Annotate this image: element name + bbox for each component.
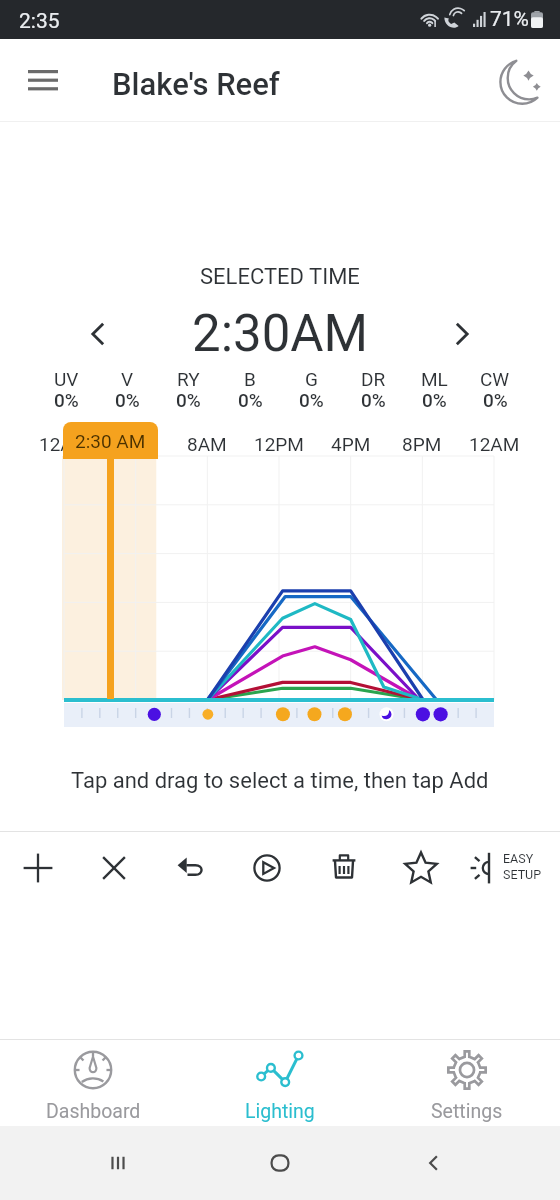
staticText: 0% <box>115 389 140 411</box>
staticText: V <box>121 368 134 390</box>
staticText: Lighting <box>245 1100 315 1123</box>
staticText: Settings <box>431 1100 503 1123</box>
staticText: 8PM <box>402 433 442 455</box>
staticText: 0% <box>176 389 201 411</box>
button[interactable]: Previous time <box>70 306 126 362</box>
button[interactable]: Back <box>409 1138 459 1188</box>
button[interactable]: Favorite <box>394 841 448 895</box>
button[interactable]: Add <box>11 841 65 895</box>
staticText: Blake's Reef <box>112 66 280 102</box>
staticText: 8AM <box>187 433 227 455</box>
staticText: Dashboard <box>46 1100 141 1123</box>
staticText: 12PM <box>254 433 304 455</box>
button[interactable]: Easy setup <box>453 841 507 895</box>
staticText: 2:30AM <box>192 304 369 364</box>
staticText: 0% <box>361 389 386 411</box>
button[interactable]: Recents <box>93 1138 143 1188</box>
staticText: RY <box>177 368 200 390</box>
staticText: 12AM <box>469 433 520 455</box>
staticText: 0% <box>238 389 263 411</box>
staticText: 2:35 <box>19 9 60 34</box>
staticText: 0% <box>483 389 508 411</box>
button[interactable]: Dashboard <box>0 1040 186 1126</box>
button[interactable]: Undo <box>163 841 217 895</box>
button[interactable]: Next time <box>434 306 490 362</box>
staticText: Tap and drag to select a time, then tap … <box>71 768 489 794</box>
staticText: DR <box>361 368 386 390</box>
staticText: 71% <box>490 7 529 32</box>
button[interactable]: Open navigation menu <box>19 60 67 100</box>
staticText: 0% <box>422 389 447 411</box>
button[interactable]: Cancel <box>87 841 141 895</box>
button[interactable]: Settings <box>373 1040 560 1126</box>
staticText: G <box>305 368 318 390</box>
staticText: 2:30 AM <box>75 430 146 452</box>
staticText: 0% <box>54 389 79 411</box>
button[interactable]: Lighting <box>186 1040 373 1126</box>
staticText: CW <box>480 368 510 390</box>
staticText: UV <box>54 368 79 390</box>
staticText: 4PM <box>331 433 371 455</box>
staticText: SETUP <box>503 867 542 882</box>
button[interactable]: Delete <box>317 841 371 895</box>
staticText: ML <box>421 368 448 390</box>
button[interactable]: Night mode <box>494 95 542 143</box>
staticText: SELECTED TIME <box>200 264 360 290</box>
staticText: 12AM <box>39 433 90 455</box>
button[interactable]: Home <box>255 1138 305 1188</box>
button[interactable]: 2:30 AM <box>63 422 158 459</box>
button[interactable]: Preview <box>240 841 294 895</box>
staticText: EASY <box>503 851 534 866</box>
staticText: B <box>244 368 256 390</box>
staticText: 0% <box>299 389 324 411</box>
